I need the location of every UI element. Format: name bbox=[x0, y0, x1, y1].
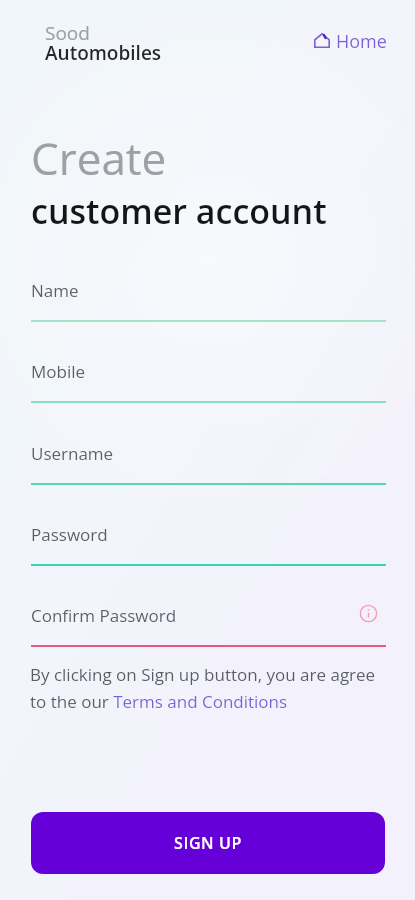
button[interactable]: Sood bbox=[45, 18, 170, 64]
staticText: Create bbox=[31, 128, 167, 188]
staticText: Confirm Password bbox=[31, 604, 177, 627]
staticText: customer account bbox=[31, 188, 327, 234]
staticText: Password bbox=[31, 523, 108, 546]
staticText: Home bbox=[336, 29, 387, 54]
staticText: Username bbox=[31, 442, 114, 465]
staticText: SIGN UP bbox=[174, 832, 242, 854]
staticText: Automobiles bbox=[45, 40, 162, 66]
button[interactable]: Username bbox=[31, 442, 386, 498]
other: Error information bbox=[359, 604, 378, 623]
button[interactable]: SIGN UP bbox=[31, 812, 385, 874]
button[interactable]: Name bbox=[31, 279, 386, 335]
button[interactable]: Password bbox=[31, 523, 386, 579]
staticText: Name bbox=[31, 279, 79, 302]
staticText: Sood bbox=[45, 20, 90, 46]
button[interactable]: Confirm Password bbox=[31, 604, 386, 660]
staticText: Mobile bbox=[31, 360, 86, 383]
staticText: By clicking on Sign up button, you are a… bbox=[30, 663, 382, 713]
button[interactable]: Home bbox=[314, 29, 387, 54]
other: Home bbox=[314, 33, 330, 48]
button[interactable]: Mobile bbox=[31, 360, 386, 416]
